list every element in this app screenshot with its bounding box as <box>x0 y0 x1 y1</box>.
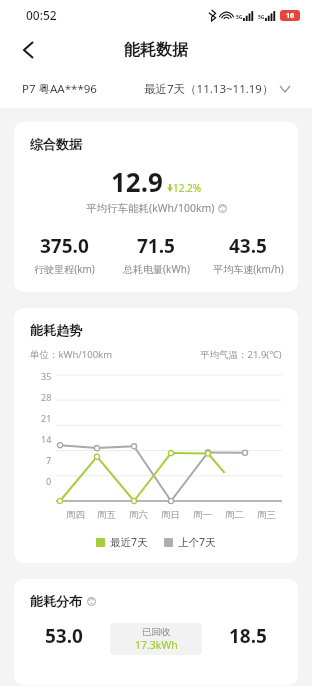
staticText: 能耗分布 <box>30 593 82 609</box>
staticText: 18.5 <box>229 623 267 649</box>
staticText: 0 <box>46 475 52 487</box>
staticText: 最近7天（11.13~11.19） <box>144 81 274 97</box>
staticText: 能耗趋势 <box>30 322 82 338</box>
staticText: 综合数据 <box>30 136 82 152</box>
staticText: 单位：kWh/100km <box>30 348 113 361</box>
button[interactable]: Back <box>10 32 46 68</box>
staticText: 平均行车能耗(kWh/100km) <box>86 201 215 215</box>
staticText: 375.0 <box>40 233 89 259</box>
staticText: 21 <box>41 412 52 424</box>
staticText: 35 <box>41 370 52 382</box>
staticText: 平均气温：21.9(℃) <box>200 348 282 361</box>
staticText: 平均车速(km/h) <box>213 262 284 276</box>
staticText: 43.5 <box>229 233 267 259</box>
staticText: 周二 <box>225 509 244 521</box>
staticText: 周一 <box>193 509 212 521</box>
staticText: 5G <box>258 14 265 21</box>
staticText: 周日 <box>161 509 180 521</box>
staticText: 周三 <box>257 509 276 521</box>
staticText: 已回收 <box>142 626 171 638</box>
button[interactable]: 最近7天（11.13~11.19） <box>144 81 290 97</box>
button[interactable]: P7 粤AA***96 <box>22 81 97 97</box>
staticText: 上个7天 <box>178 535 216 549</box>
staticText: 5G <box>236 14 243 21</box>
staticText: 12.9 <box>111 164 163 199</box>
staticText: 周五 <box>97 509 116 521</box>
staticText: 周四 <box>66 509 85 521</box>
staticText: 16 <box>286 11 295 21</box>
staticText: 12.2% <box>173 181 202 195</box>
staticText: 总耗电量(kWh) <box>123 262 190 276</box>
staticText: 71.5 <box>137 233 175 259</box>
staticText: 最近7天 <box>110 535 148 549</box>
staticText: 17.3kWh <box>135 638 178 652</box>
staticText: 行驶里程(km) <box>34 262 95 276</box>
staticText: 28 <box>41 391 52 403</box>
staticText: 7 <box>46 454 52 466</box>
staticText: 00:52 <box>26 7 57 23</box>
staticText: 14 <box>41 433 52 445</box>
staticText: 53.0 <box>45 623 83 649</box>
staticText: 能耗数据 <box>124 40 188 60</box>
staticText: 周六 <box>129 509 148 521</box>
